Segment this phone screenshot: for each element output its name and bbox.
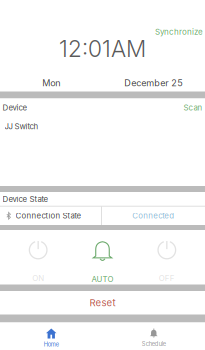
staticText: ON [32,273,44,283]
staticText: Connected [132,211,174,220]
staticText: OFF [159,273,175,283]
staticText: Schedule [142,340,166,347]
staticText: December 25 [124,77,183,88]
staticText: 12:01AM [59,35,146,62]
staticText: AUTO [91,274,113,284]
staticText: Connection State [16,211,82,220]
staticText: Reset [89,297,115,308]
staticText: Device State [2,194,48,204]
button[interactable]: Scan [183,103,202,112]
button[interactable]: Schedule [102,322,205,350]
staticText: Device [2,103,27,112]
button[interactable]: Synchronize [155,0,205,37]
button[interactable]: JJ Switch [0,112,205,131]
staticText: Home [44,341,59,348]
staticText: Mon [42,77,60,88]
button[interactable]: Reset [0,291,205,314]
staticText: JJ Switch [4,121,38,131]
button[interactable]: AUTO [70,230,135,284]
staticText: Scan [183,103,202,112]
button[interactable]: ON [6,230,70,284]
button[interactable]: OFF [135,230,199,284]
button[interactable]: Home [0,322,102,350]
staticText: Synchronize [155,27,203,37]
